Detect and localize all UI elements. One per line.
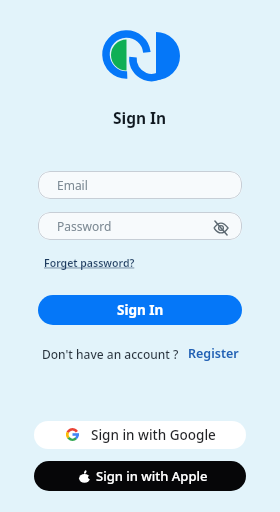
button[interactable]: Sign In	[38, 295, 242, 325]
staticText: Don't have an account ?	[42, 346, 179, 362]
staticText: Sign In	[117, 301, 164, 319]
button[interactable]: Password	[38, 212, 242, 240]
button[interactable]: Sign in with Apple	[34, 461, 246, 491]
button[interactable]: Forget password?	[44, 256, 135, 270]
button[interactable]: Email	[38, 171, 242, 199]
button[interactable]: Sign in with Google	[34, 421, 246, 449]
staticText: Sign In	[113, 107, 167, 128]
button[interactable]: Register	[188, 345, 239, 362]
staticText: Password	[57, 218, 112, 234]
staticText: Sign in with Google	[91, 426, 216, 444]
staticText: Sign in with Apple	[96, 467, 208, 485]
staticText: Email	[57, 177, 88, 193]
